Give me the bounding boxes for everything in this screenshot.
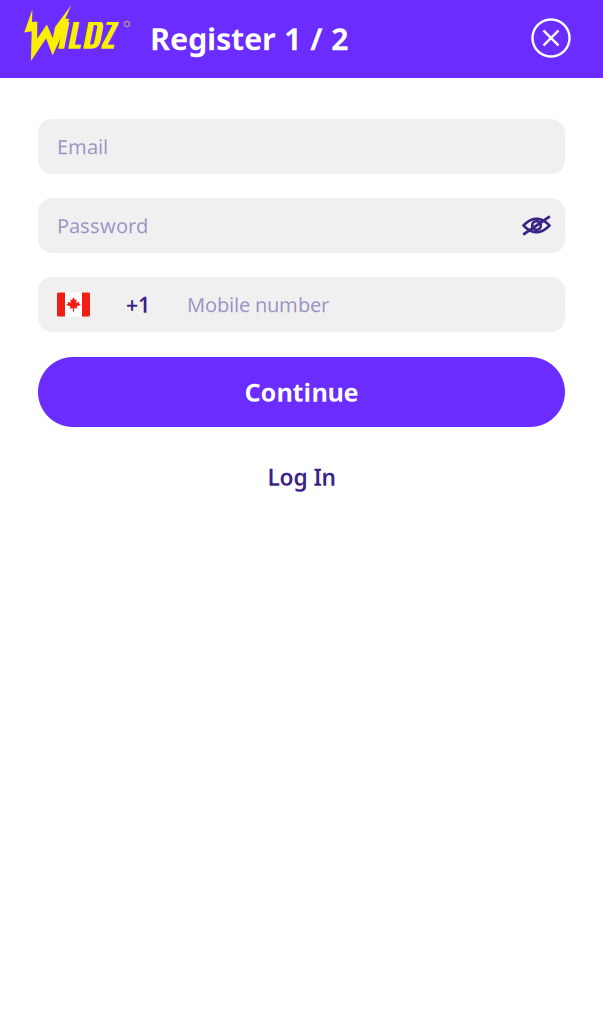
staticText: +1 <box>126 290 150 319</box>
staticText: Password <box>57 212 148 239</box>
staticText: Register 1 / 2 <box>150 18 349 59</box>
staticText: ILDZ <box>56 9 114 58</box>
button[interactable]: Close <box>529 16 573 60</box>
staticText: Mobile number <box>187 291 329 318</box>
button[interactable]: Show password <box>510 207 551 244</box>
button[interactable]: Continue <box>38 357 565 427</box>
staticText: Log In <box>267 462 335 492</box>
staticText: Email <box>57 133 108 160</box>
staticText: Continue <box>244 375 358 409</box>
button[interactable]: Select country code <box>57 290 150 319</box>
button[interactable]: Log In <box>38 460 565 494</box>
